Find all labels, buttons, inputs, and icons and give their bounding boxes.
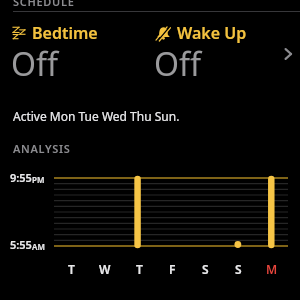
staticText: T <box>68 261 75 277</box>
staticText: F <box>169 261 176 277</box>
staticText: SCHEDULE <box>13 0 75 9</box>
staticText: ANALYSIS <box>13 141 71 156</box>
button[interactable]: Open sleep schedule <box>276 13 300 91</box>
button[interactable]: Bedtime <box>0 13 300 91</box>
staticText: 5:55 <box>10 237 32 252</box>
staticText: AM <box>32 241 45 252</box>
staticText: S <box>235 261 242 277</box>
other: Wake Up alarm off <box>156 26 171 41</box>
staticText: W <box>99 261 111 277</box>
staticText: S <box>202 261 209 277</box>
staticText: 9:55 <box>10 170 32 185</box>
staticText: Wake Up <box>177 22 247 44</box>
staticText: Active Mon Tue Wed Thu Sun. <box>13 108 180 124</box>
staticText: M <box>266 261 278 277</box>
staticText: Off <box>11 42 59 86</box>
staticText: Bedtime <box>32 22 98 44</box>
staticText: Off <box>154 42 202 86</box>
staticText: PM <box>32 174 45 185</box>
staticText: T <box>136 261 143 277</box>
other: Bedtime <box>13 27 26 40</box>
